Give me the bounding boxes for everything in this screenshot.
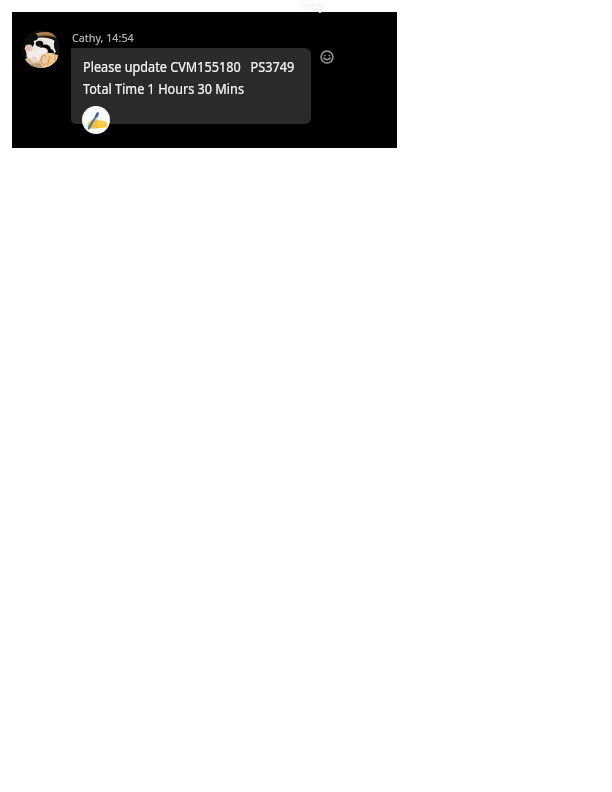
button[interactable]: Please update CVM155180 PS3749 Total Tim…: [71, 48, 311, 124]
staticText: Please update CVM155180 PS3749 Total Tim…: [83, 56, 294, 99]
button[interactable]: Cathy profile picture: [22, 30, 60, 68]
staticText: Today: [299, 0, 324, 13]
staticText: Cathy, 14:54: [72, 30, 134, 46]
button[interactable]: Add reaction: [320, 50, 334, 64]
button[interactable]: Writing hand reaction: [82, 106, 110, 134]
